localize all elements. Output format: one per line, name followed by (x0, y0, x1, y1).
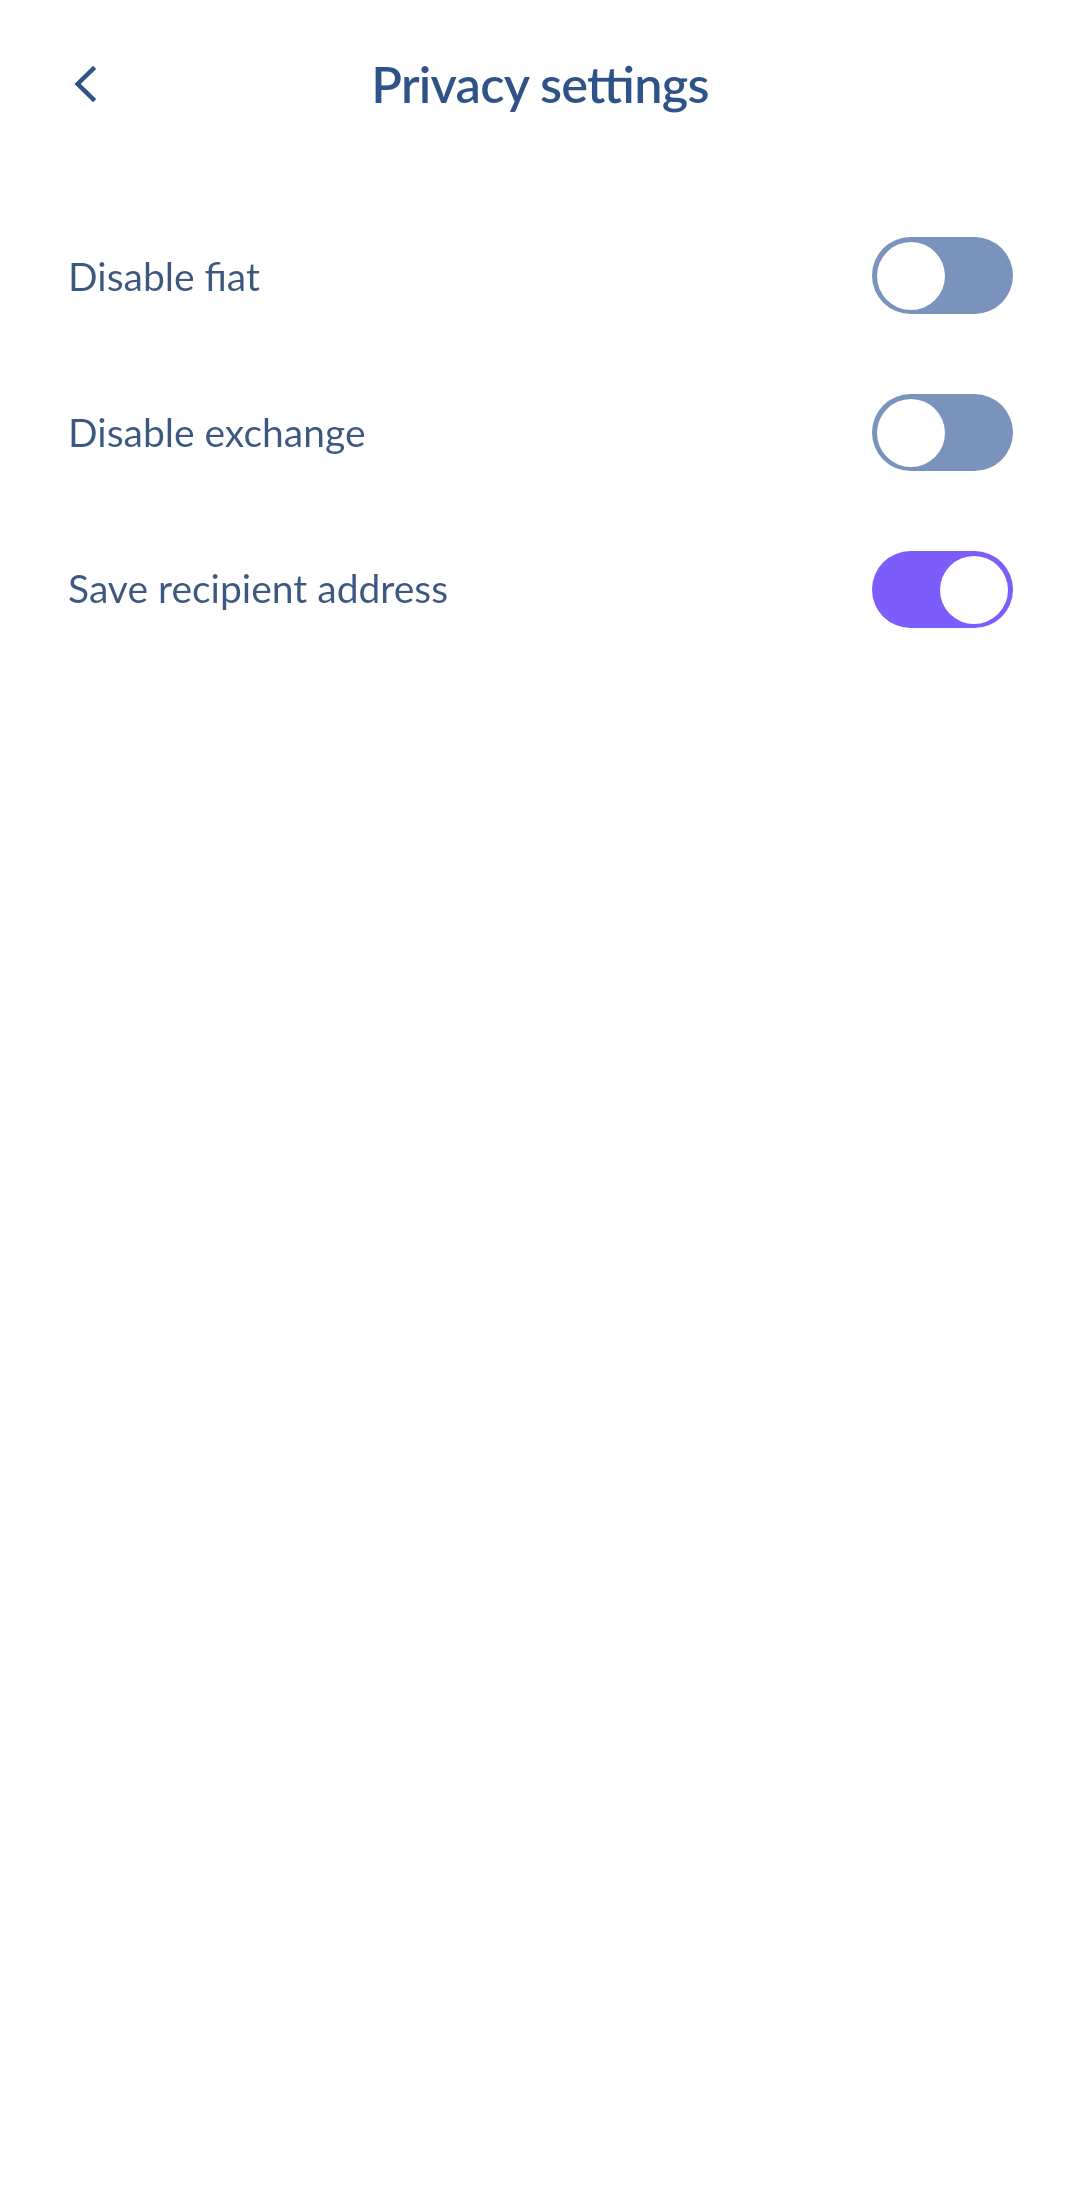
button[interactable]: Disable fiat, off (872, 237, 1013, 314)
button[interactable]: Disable exchange, off (872, 394, 1013, 471)
button[interactable]: Save recipient address (0, 511, 1080, 668)
button[interactable]: Save recipient address, on (872, 551, 1013, 628)
staticText: Privacy settings (0, 53, 1080, 114)
staticText: Disable exchange (68, 409, 366, 456)
staticText: Disable fiat (68, 253, 260, 300)
staticText: Save recipient address (68, 565, 449, 612)
button[interactable]: Back (45, 44, 125, 124)
button[interactable]: Disable exchange (0, 354, 1080, 511)
button[interactable]: Disable fiat (0, 197, 1080, 354)
